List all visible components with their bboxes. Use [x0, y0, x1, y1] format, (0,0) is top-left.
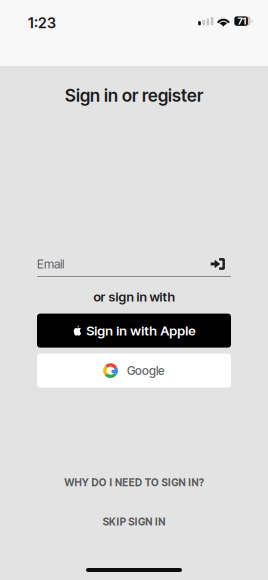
staticText: 71: [237, 15, 246, 27]
staticText: SKIP SIGN IN: [103, 516, 165, 528]
staticText: Google: [127, 363, 165, 378]
button[interactable]: Submit email: [211, 258, 231, 270]
button[interactable]: Google: [37, 354, 231, 388]
staticText: or sign in with: [93, 289, 174, 305]
button[interactable]: SKIP SIGN IN: [103, 516, 165, 528]
staticText: WHY DO I NEED TO SIGN IN?: [64, 476, 204, 489]
staticText: Sign in or register: [65, 85, 203, 106]
button[interactable]: WHY DO I NEED TO SIGN IN?: [64, 476, 204, 489]
staticText: 1:23: [28, 14, 56, 32]
button[interactable]: Sign in with Apple: [37, 314, 231, 348]
staticText: Email: [37, 257, 64, 271]
staticText: Sign in with Apple: [86, 323, 195, 339]
